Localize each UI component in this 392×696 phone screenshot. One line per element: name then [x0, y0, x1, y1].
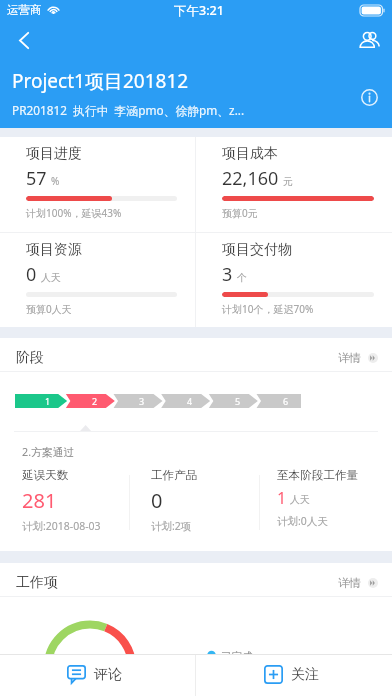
staticText: 1	[45, 395, 51, 407]
staticText: 计划:0人天	[277, 514, 328, 528]
button[interactable]: 项目成本	[196, 137, 392, 232]
staticText: 0	[26, 262, 37, 287]
staticText: 计划:2项	[151, 519, 192, 533]
button[interactable]: 5	[205, 394, 253, 408]
staticText: 0	[151, 487, 163, 514]
staticText: 57	[26, 166, 47, 191]
staticText: 预算0人天	[26, 302, 72, 316]
button[interactable]: 关注	[196, 655, 392, 696]
button[interactable]: 项目资源	[0, 233, 195, 327]
staticText: 至本阶段工作量	[277, 468, 359, 483]
staticText: 计划10个，延迟70%	[222, 302, 314, 316]
staticText: 详情	[338, 576, 361, 590]
staticText: 延误天数	[22, 468, 69, 483]
staticText: 2	[92, 395, 98, 407]
button[interactable]: 评论	[0, 655, 195, 696]
button[interactable]: Back	[7, 23, 41, 57]
staticText: Project1项目201812	[12, 68, 189, 94]
staticText: 6	[283, 395, 289, 407]
staticText: 个	[237, 271, 247, 284]
button[interactable]: 3	[109, 394, 157, 408]
staticText: 项目进度	[26, 145, 82, 163]
button[interactable]: Info	[352, 80, 386, 114]
staticText: 项目资源	[26, 241, 82, 259]
staticText: 人天	[290, 493, 310, 506]
staticText: 元	[283, 175, 293, 188]
staticText: 项目交付物	[222, 241, 292, 259]
staticText: 计划100%，延误43%	[26, 206, 122, 220]
button[interactable]: 详情	[338, 572, 378, 594]
button[interactable]: Members	[352, 23, 386, 57]
staticText: 关注	[291, 666, 319, 684]
staticText: 3	[222, 262, 233, 287]
staticText: 已完成	[221, 650, 253, 663]
staticText: 281	[22, 487, 57, 514]
staticText: 4	[187, 395, 193, 407]
staticText: 项目成本	[222, 145, 278, 163]
staticText: 详情	[338, 351, 361, 365]
staticText: 工作产品	[151, 468, 198, 483]
staticText: 阶段	[16, 349, 44, 367]
staticText: 22,160	[222, 166, 279, 191]
staticText: 工作项	[16, 574, 58, 592]
staticText: 3	[139, 395, 145, 407]
button[interactable]: 6	[253, 394, 301, 408]
staticText: 5	[235, 395, 241, 407]
staticText: 计划:2018-08-03	[22, 519, 101, 533]
staticText: 人天	[41, 271, 61, 284]
staticText: 预算0元	[222, 206, 258, 220]
staticText: 下午3:21	[174, 2, 224, 19]
button[interactable]: 4	[157, 394, 205, 408]
staticText: PR201812 执行中 李涵pmo、徐静pm、z...	[12, 102, 245, 118]
staticText: 1	[277, 487, 287, 509]
button[interactable]: 详情	[338, 347, 378, 369]
button[interactable]: 项目进度	[0, 137, 195, 232]
staticText: %	[51, 174, 60, 188]
button[interactable]: 项目交付物	[196, 233, 392, 327]
staticText: 2.方案通过	[22, 444, 75, 459]
staticText: 运营商	[7, 3, 42, 17]
staticText: 评论	[94, 666, 122, 684]
button[interactable]: 1	[15, 394, 62, 408]
button[interactable]: 2	[62, 394, 109, 408]
